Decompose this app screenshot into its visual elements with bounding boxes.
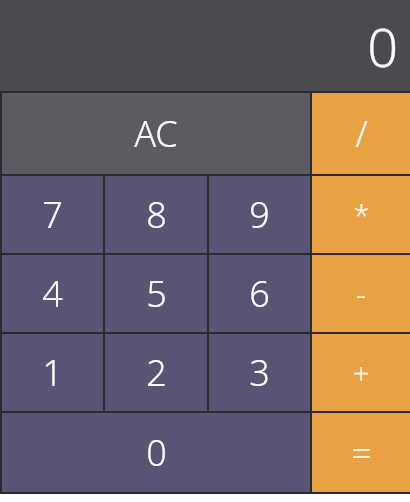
button[interactable]: 9 (209, 176, 310, 253)
button[interactable]: 1 (2, 334, 103, 411)
button[interactable]: 7 (2, 176, 103, 253)
staticText: + (352, 352, 370, 393)
button[interactable]: 6 (209, 255, 310, 332)
button[interactable]: 3 (209, 334, 310, 411)
staticText: 0 (146, 428, 167, 477)
staticText: 1 (42, 348, 63, 397)
staticText: 9 (249, 190, 270, 239)
button[interactable]: 4 (2, 255, 103, 332)
staticText: 2 (146, 348, 167, 397)
button[interactable]: AC (2, 93, 310, 174)
staticText: / (355, 109, 368, 158)
button[interactable]: 0 (2, 413, 310, 492)
button[interactable]: 8 (105, 176, 207, 253)
staticText: 5 (146, 269, 167, 318)
staticText: 3 (249, 348, 270, 397)
staticText: 4 (42, 269, 63, 318)
button[interactable]: 5 (105, 255, 207, 332)
button[interactable]: + (312, 334, 410, 411)
staticText: * (353, 194, 370, 235)
staticText: 7 (42, 190, 63, 239)
button[interactable]: 2 (105, 334, 207, 411)
staticText: 6 (249, 269, 270, 318)
button[interactable]: / (312, 93, 410, 174)
button[interactable]: = (312, 413, 410, 492)
staticText: 0 (367, 9, 398, 83)
staticText: = (351, 428, 372, 477)
button[interactable]: * (312, 176, 410, 253)
staticText: AC (134, 109, 178, 158)
staticText: - (356, 273, 366, 314)
staticText: 8 (146, 190, 167, 239)
button[interactable]: - (312, 255, 410, 332)
